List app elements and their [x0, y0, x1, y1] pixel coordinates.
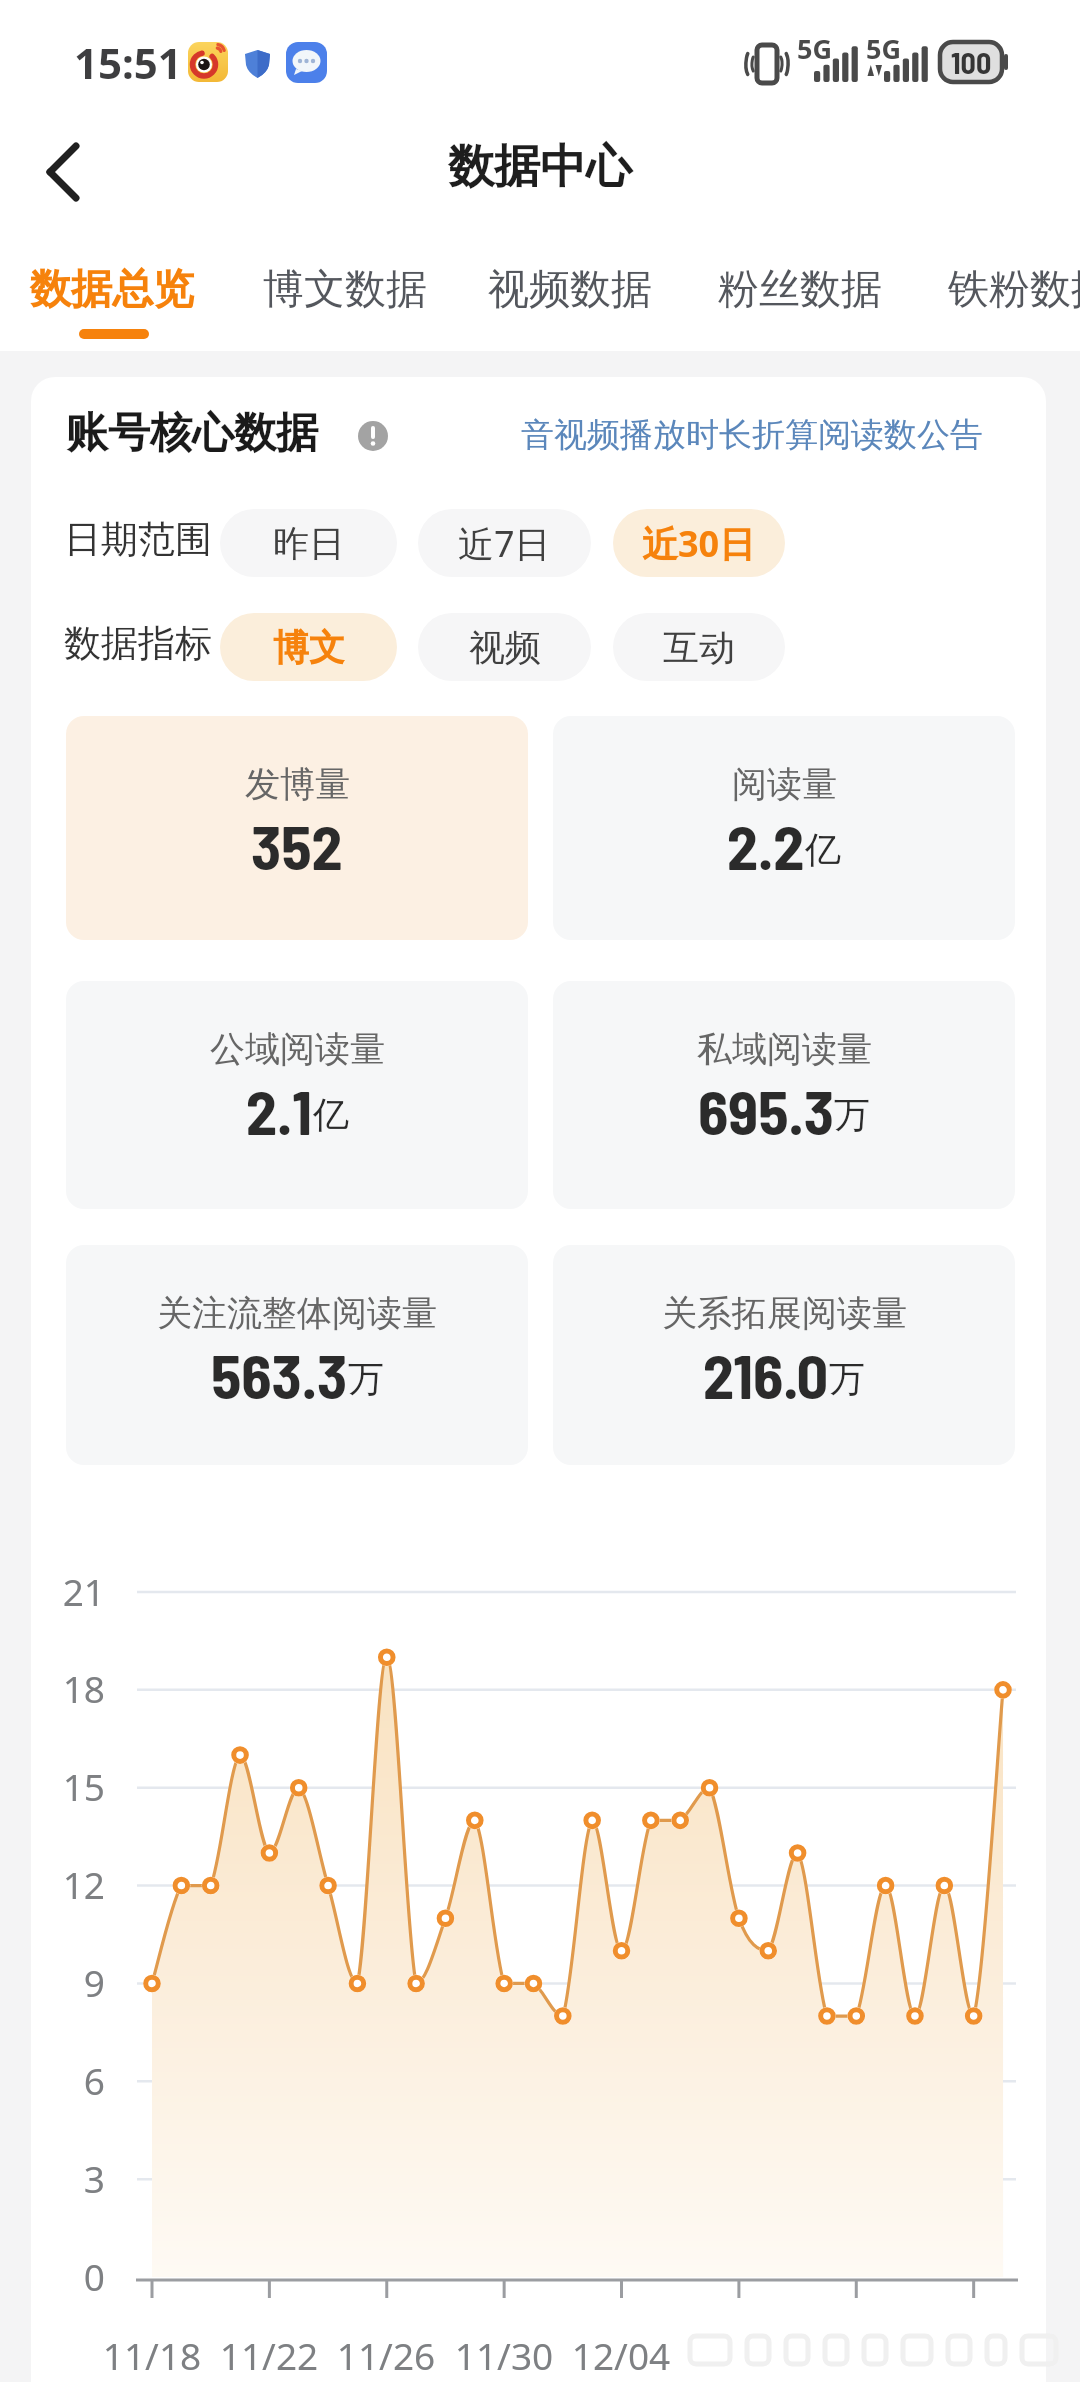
staticText: 日期范围 — [64, 516, 212, 563]
button[interactable]: 视频数据 — [488, 264, 652, 316]
staticText: 万 — [834, 1092, 870, 1137]
staticText: 11/18 — [97, 2330, 207, 2380]
staticText: 11/30 — [449, 2330, 559, 2380]
button[interactable]: 博文数据 — [263, 264, 427, 316]
button[interactable]: 博文 — [220, 613, 397, 681]
staticText: 352 — [251, 808, 343, 882]
button[interactable]: 阅读量 — [553, 716, 1015, 940]
staticText: 铁粉数据 — [948, 264, 1080, 316]
staticText: 3 — [35, 2153, 105, 2203]
staticText: 阅读量 — [732, 762, 837, 806]
button[interactable]: 近30日 — [613, 509, 785, 577]
staticText: 5G — [866, 30, 901, 67]
staticText: 近7日 — [458, 519, 551, 568]
staticText: 12 — [35, 1859, 105, 1909]
staticText: 2.2 — [727, 808, 805, 882]
button[interactable]: 视频 — [418, 613, 591, 681]
button[interactable]: 昨日 — [220, 509, 397, 577]
staticText: 视频 — [469, 625, 541, 670]
staticText: 18 — [35, 1663, 105, 1713]
button[interactable]: 私域阅读量 — [553, 981, 1015, 1209]
staticText: 昨日 — [273, 521, 345, 566]
staticText: 发博量 — [245, 762, 350, 806]
staticText: 2.1 — [246, 1073, 313, 1147]
button[interactable]: 粉丝数据 — [718, 264, 882, 316]
staticText: 数据总览 — [30, 264, 194, 316]
staticText: 账号核心数据 — [66, 407, 318, 460]
button[interactable]: 音视频播放时长折算阅读数公告 — [521, 414, 983, 456]
staticText: 博文数据 — [263, 264, 427, 316]
staticText: 公域阅读量 — [210, 1027, 385, 1071]
staticText: 视频数据 — [488, 264, 652, 316]
staticText: 5G — [797, 30, 832, 67]
button[interactable]: 近7日 — [418, 509, 591, 577]
staticText: 互动 — [663, 625, 735, 670]
staticText: 博文 — [273, 625, 345, 670]
staticText: 100 — [951, 44, 992, 80]
staticText: 21 — [35, 1566, 105, 1616]
button[interactable]: 铁粉数据 — [948, 264, 1080, 316]
button[interactable]: 数据总览 — [30, 264, 194, 316]
button[interactable] — [46, 144, 80, 200]
staticText: 563.3 — [211, 1337, 348, 1411]
staticText: 9 — [35, 1957, 105, 2007]
button[interactable]: 发博量 — [66, 716, 528, 940]
staticText: 亿 — [313, 1092, 349, 1137]
staticText: 万 — [829, 1356, 865, 1401]
staticText: 15 — [35, 1761, 105, 1811]
staticText: 11/22 — [214, 2330, 324, 2380]
staticText: 亿 — [805, 827, 841, 872]
staticText: 万 — [348, 1356, 384, 1401]
staticText: 数据指标 — [64, 620, 212, 667]
staticText: 695.3 — [698, 1073, 834, 1147]
staticText: 216.0 — [703, 1337, 829, 1411]
button[interactable]: 公域阅读量 — [66, 981, 528, 1209]
staticText: 6 — [35, 2055, 105, 2105]
staticText: 关注流整体阅读量 — [157, 1291, 437, 1335]
staticText: 0 — [35, 2251, 105, 2301]
staticText: 关系拓展阅读量 — [662, 1291, 907, 1335]
staticText: 数据中心 — [448, 138, 632, 196]
staticText: 12/04 — [566, 2330, 676, 2380]
staticText: 11/26 — [331, 2330, 441, 2380]
staticText: 15:51 — [74, 34, 182, 91]
staticText: 粉丝数据 — [718, 264, 882, 316]
button[interactable]: 关注流整体阅读量 — [66, 1245, 528, 1465]
button[interactable]: 关系拓展阅读量 — [553, 1245, 1015, 1465]
staticText: 近30日 — [642, 519, 756, 568]
button[interactable]: 互动 — [613, 613, 785, 681]
staticText: 私域阅读量 — [697, 1027, 872, 1071]
staticText: 音视频播放时长折算阅读数公告 — [521, 414, 983, 456]
